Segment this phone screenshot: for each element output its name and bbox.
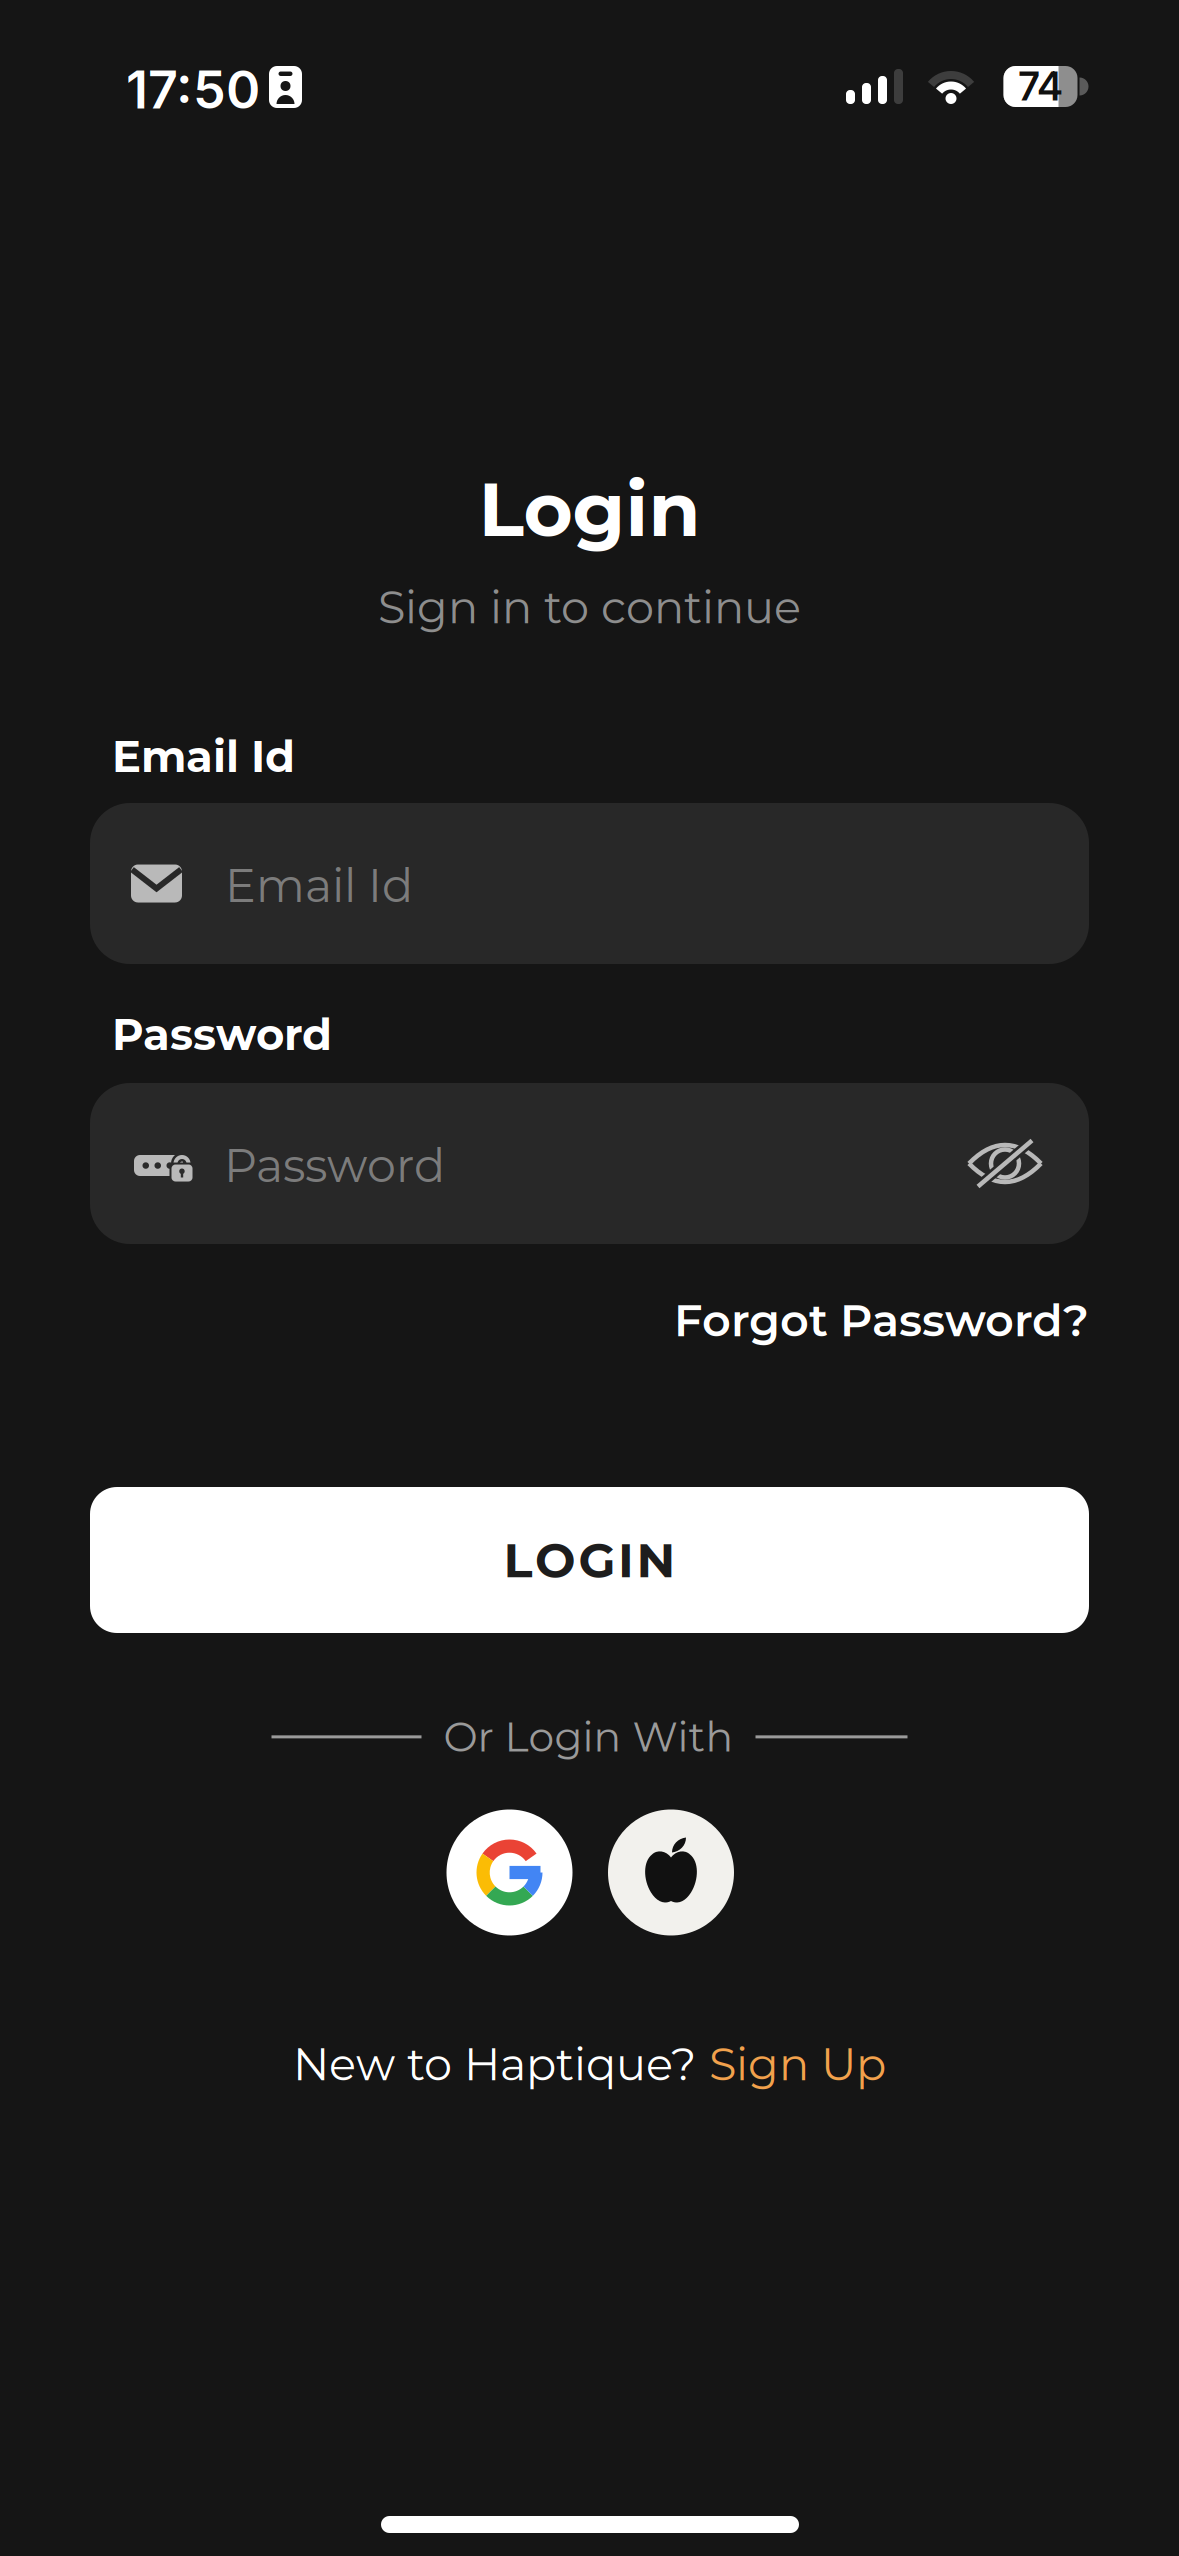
staticText: New to Haptique? (293, 2037, 696, 2091)
button[interactable]: Login with Google (446, 1809, 572, 1935)
staticText: L (503, 1531, 532, 1589)
staticText: N (636, 1531, 675, 1589)
staticText: 17:50 (126, 58, 260, 121)
staticText: Email Id (112, 730, 295, 783)
staticText: Or Login With (443, 1712, 733, 1762)
staticText: Forgot Password? (674, 1293, 1089, 1347)
button[interactable]: Sign Up (709, 2037, 886, 2091)
button[interactable]: Forgot Password? (674, 1293, 1089, 1347)
staticText: 74 (1018, 63, 1062, 110)
staticText: Sign in to continue (378, 580, 801, 634)
button[interactable]: Login with Apple (608, 1809, 734, 1935)
staticText: I (618, 1531, 634, 1589)
staticText: O (535, 1531, 576, 1589)
button[interactable]: Show password (969, 1140, 1041, 1186)
staticText: Sign Up (709, 2037, 886, 2091)
button[interactable]: Email Id (90, 803, 1089, 964)
staticText: Email Id (225, 857, 413, 914)
staticText: Login (478, 463, 700, 555)
button[interactable]: L (90, 1487, 1089, 1633)
button[interactable]: Password (90, 1083, 1089, 1244)
staticText: G (578, 1531, 615, 1589)
staticText: Password (224, 1137, 445, 1194)
staticText: Password (112, 1008, 332, 1061)
